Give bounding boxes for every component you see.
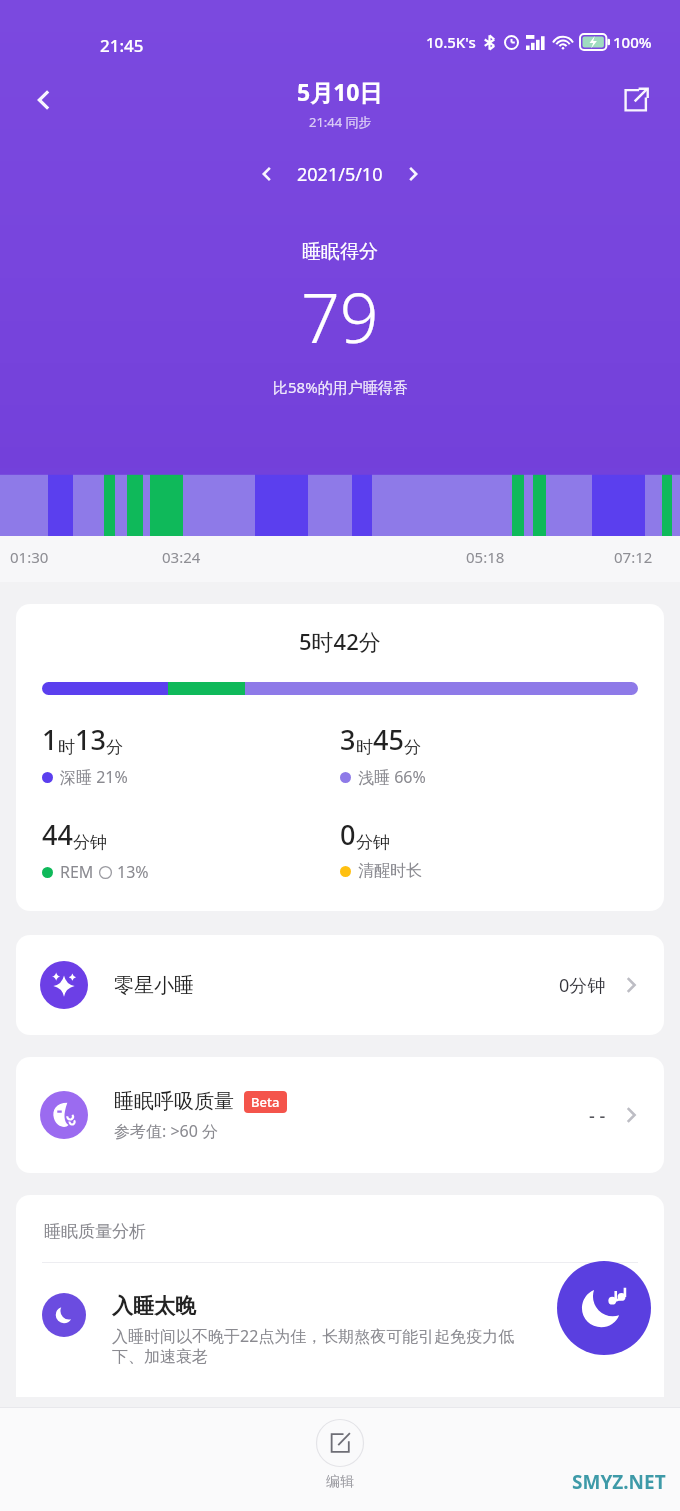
staticText: 13 <box>75 721 106 758</box>
staticText: 01:30 <box>10 547 49 567</box>
staticText: 10.5K's <box>426 32 476 52</box>
staticText: 分 <box>106 737 123 758</box>
staticText: 21:45 <box>100 34 144 57</box>
staticText: 05:18 <box>466 547 505 567</box>
staticText: SMYZ.NET <box>572 1469 666 1495</box>
button[interactable]: 睡眠质量分析 <box>16 1195 664 1397</box>
button[interactable]: Share <box>608 72 664 128</box>
staticText: 零星小睡 <box>114 973 194 998</box>
staticText: 睡眠质量分析 <box>44 1221 146 1242</box>
staticText: 79 <box>301 270 379 363</box>
staticText: 21:44 同步 <box>309 113 372 131</box>
staticText: 睡眠得分 <box>302 240 378 264</box>
staticText: 下、加速衰老 <box>112 1347 208 1367</box>
staticText: 13% <box>117 861 149 883</box>
staticText: 100% <box>613 32 652 52</box>
staticText: 03:24 <box>162 547 201 567</box>
button[interactable]: Sleep music <box>557 1261 651 1355</box>
staticText: 0分钟 <box>559 973 606 998</box>
staticText: 编辑 <box>326 1473 354 1491</box>
staticText: 深睡 21% <box>60 766 128 788</box>
staticText: 分 <box>404 737 421 758</box>
staticText: 分钟 <box>73 832 107 853</box>
button[interactable]: 编辑 <box>298 1415 382 1495</box>
staticText: 浅睡 66% <box>358 766 426 788</box>
button[interactable]: 5时42分 <box>16 604 664 911</box>
staticText: - - <box>589 1103 606 1128</box>
staticText: 45 <box>373 721 404 758</box>
staticText: 时 <box>58 737 75 758</box>
staticText: 2021/5/10 <box>297 162 383 187</box>
staticText: 比58%的用户睡得香 <box>273 377 408 397</box>
staticText: 时 <box>356 737 373 758</box>
staticText: 清醒时长 <box>358 861 422 881</box>
staticText: Beta <box>251 1093 280 1111</box>
staticText: 入睡太晚 <box>112 1293 196 1319</box>
button[interactable]: 零星小睡 <box>16 935 664 1035</box>
button[interactable]: Next day <box>391 152 435 196</box>
staticText: 5时42分 <box>299 626 381 656</box>
button[interactable]: Back <box>16 72 72 128</box>
staticText: 0 <box>340 816 356 853</box>
staticText: 5月10日 <box>297 76 383 107</box>
staticText: 入睡时间以不晚于22点为佳，长期熬夜可能引起免疫力低 <box>112 1325 515 1347</box>
staticText: 1 <box>42 721 58 758</box>
button[interactable]: 睡眠呼吸质量 <box>16 1057 664 1173</box>
staticText: 参考值: >60 分 <box>114 1120 219 1142</box>
staticText: 睡眠呼吸质量 <box>114 1089 234 1114</box>
staticText: 3 <box>340 721 356 758</box>
staticText: 07:12 <box>614 547 653 567</box>
staticText: REM <box>60 861 94 883</box>
staticText: 44 <box>42 816 73 853</box>
button[interactable]: Previous day <box>245 152 289 196</box>
staticText: 分钟 <box>356 832 390 853</box>
